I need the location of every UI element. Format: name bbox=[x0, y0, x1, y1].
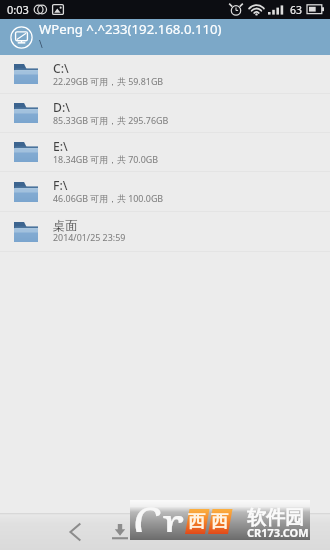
staticText: 2014/01/25 23:59 bbox=[53, 231, 126, 243]
staticText: 西 bbox=[211, 511, 228, 532]
staticText: C:\ bbox=[53, 60, 69, 77]
button[interactable]: Server bbox=[0, 19, 330, 55]
staticText: 85.33GB 可用，共 295.76GB bbox=[53, 114, 169, 126]
button[interactable]: E:\ bbox=[0, 133, 330, 172]
button[interactable]: 桌面 bbox=[0, 212, 330, 252]
staticText: 0:03 bbox=[7, 2, 29, 17]
staticText: 46.06GB 可用，共 100.0GB bbox=[53, 192, 164, 204]
button[interactable]: Back bbox=[59, 513, 91, 550]
staticText: E:\ bbox=[53, 138, 68, 155]
staticText: D:\ bbox=[53, 99, 70, 116]
staticText: \ bbox=[39, 37, 43, 51]
staticText: Cr bbox=[133, 492, 184, 532]
button[interactable]: C:\ bbox=[0, 55, 330, 94]
staticText: CR173.COM bbox=[247, 525, 309, 540]
button[interactable]: Download bbox=[104, 513, 136, 550]
button[interactable]: F:\ bbox=[0, 172, 330, 212]
other: Server bbox=[10, 26, 33, 49]
staticText: 桌面 bbox=[53, 218, 78, 233]
staticText: F:\ bbox=[53, 177, 68, 194]
staticText: 22.29GB 可用，共 59.81GB bbox=[53, 75, 164, 87]
button[interactable]: D:\ bbox=[0, 94, 330, 133]
staticText: 18.34GB 可用，共 70.0GB bbox=[53, 153, 159, 165]
staticText: 63 bbox=[290, 3, 303, 17]
staticText: WPeng ^.^233(192.168.0.110) bbox=[39, 20, 222, 38]
staticText: 西 bbox=[188, 511, 205, 532]
staticText: 软件园 bbox=[247, 506, 304, 530]
